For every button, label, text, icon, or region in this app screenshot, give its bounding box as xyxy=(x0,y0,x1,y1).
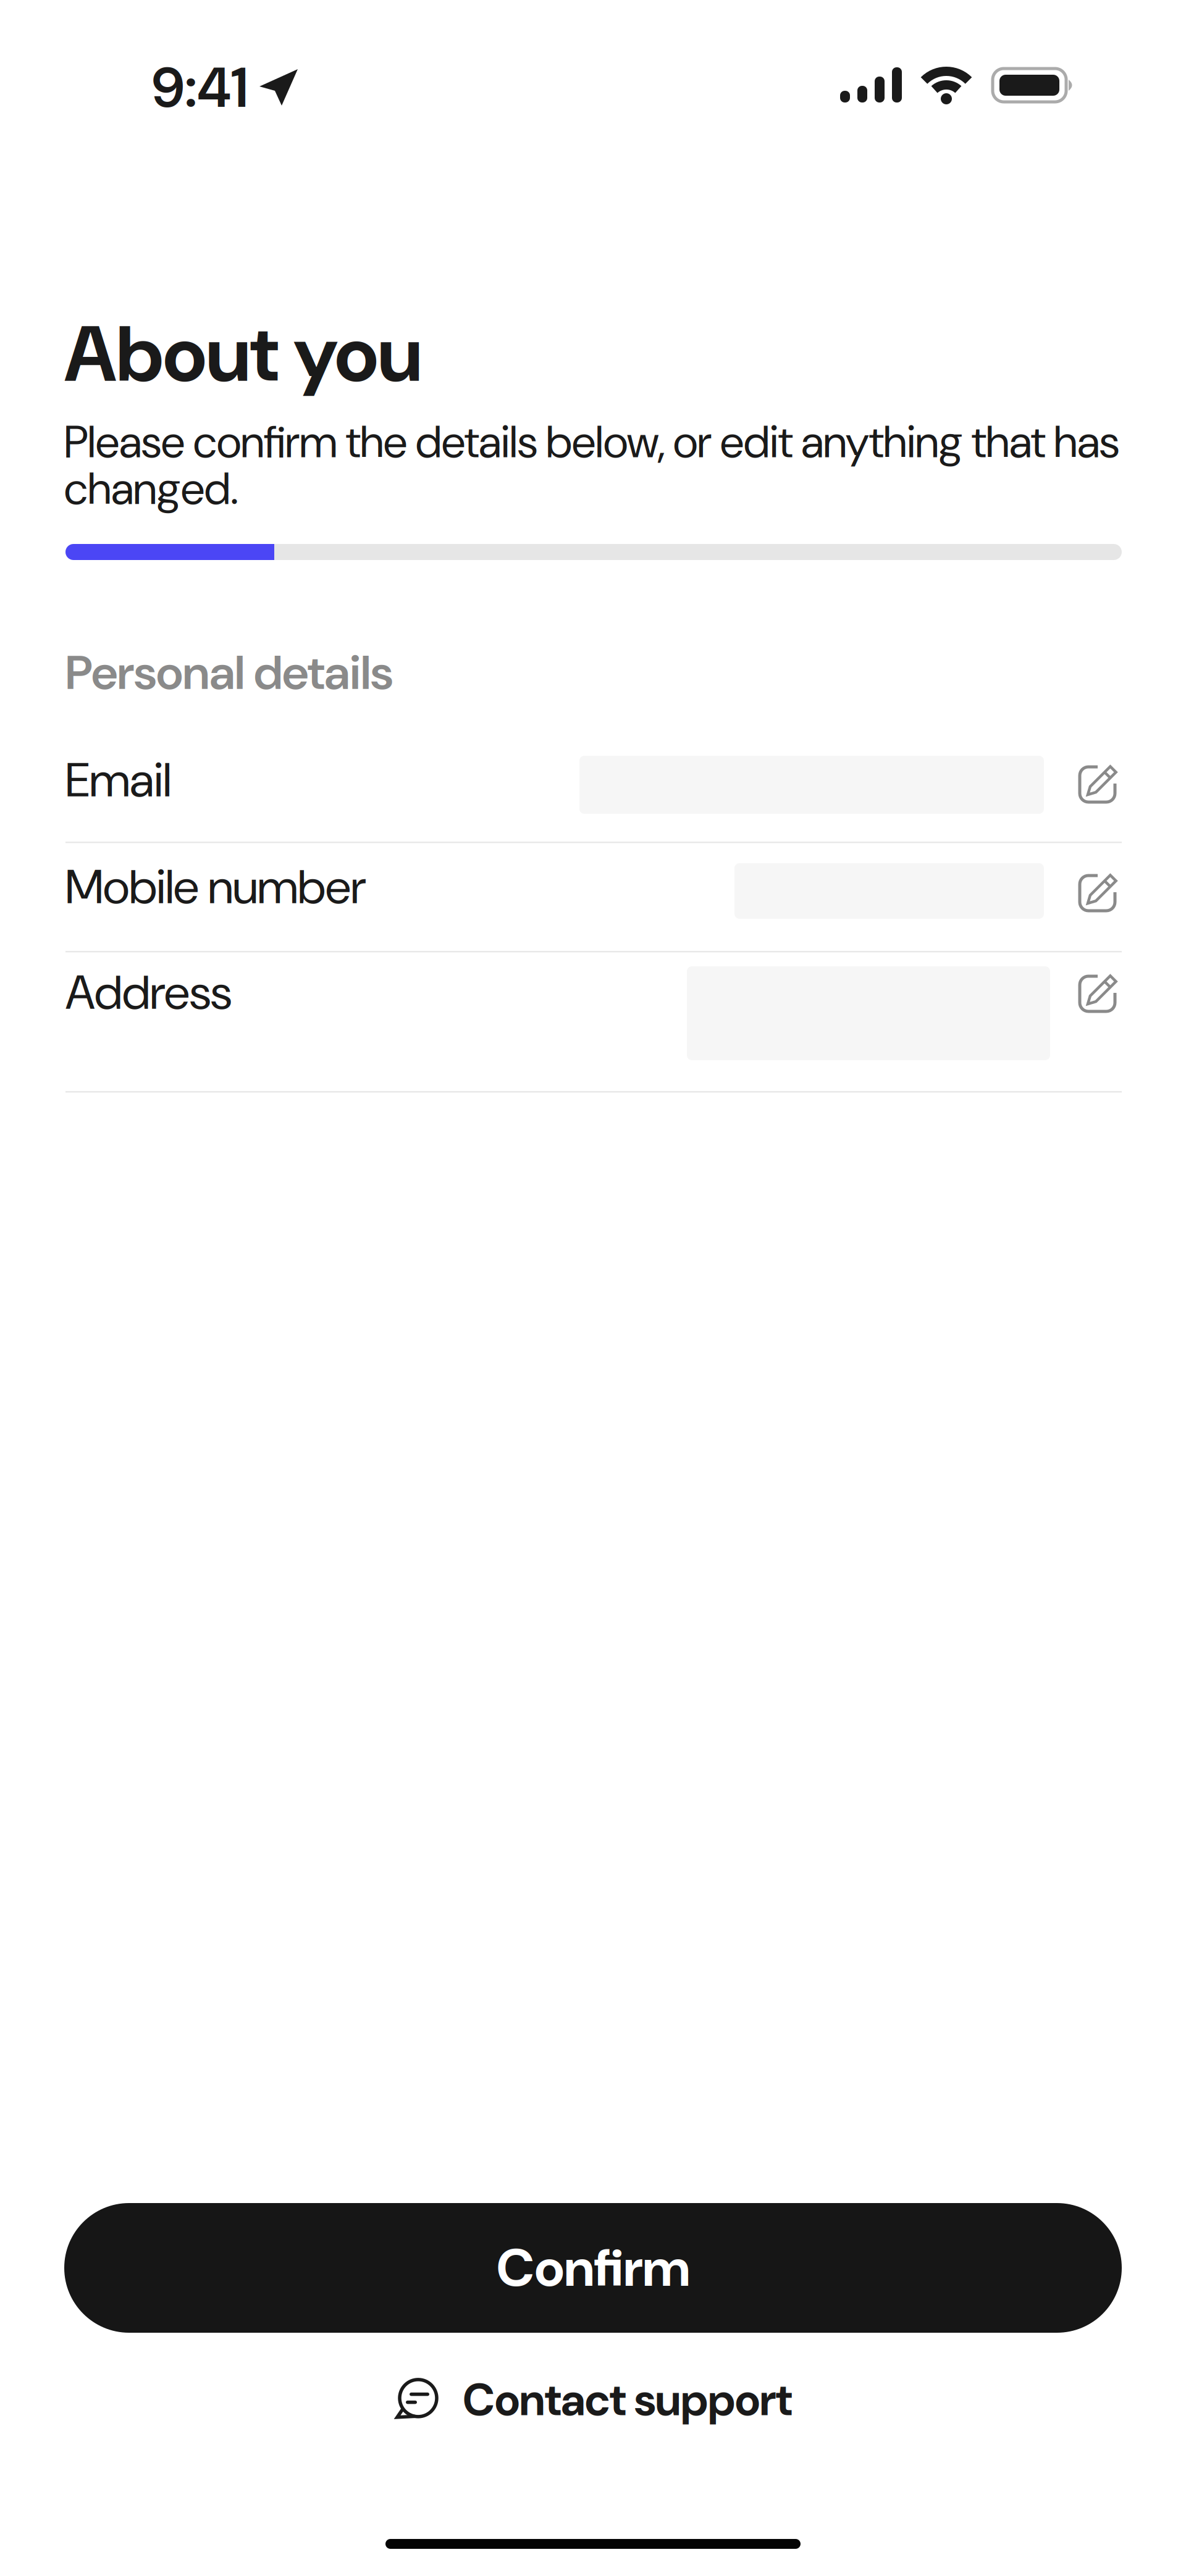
staticText: Please confirm the details below, or edi… xyxy=(64,413,1119,518)
button[interactable]: Edit mobile number xyxy=(1075,871,1124,920)
staticText: Confirm xyxy=(496,2234,690,2302)
button[interactable]: Confirm xyxy=(64,2203,1122,2333)
staticText: Mobile number xyxy=(65,856,366,918)
staticText: About you xyxy=(64,304,422,405)
staticText: Address xyxy=(65,961,232,1024)
button[interactable]: Edit address xyxy=(1075,971,1124,1021)
staticText: Email xyxy=(65,749,171,811)
staticText: Personal details xyxy=(65,642,393,704)
button[interactable]: Edit email xyxy=(1075,762,1124,811)
button[interactable]: Contact support xyxy=(396,2371,792,2429)
staticText: Contact support xyxy=(463,2371,792,2429)
staticText: 9:41 xyxy=(152,51,248,124)
